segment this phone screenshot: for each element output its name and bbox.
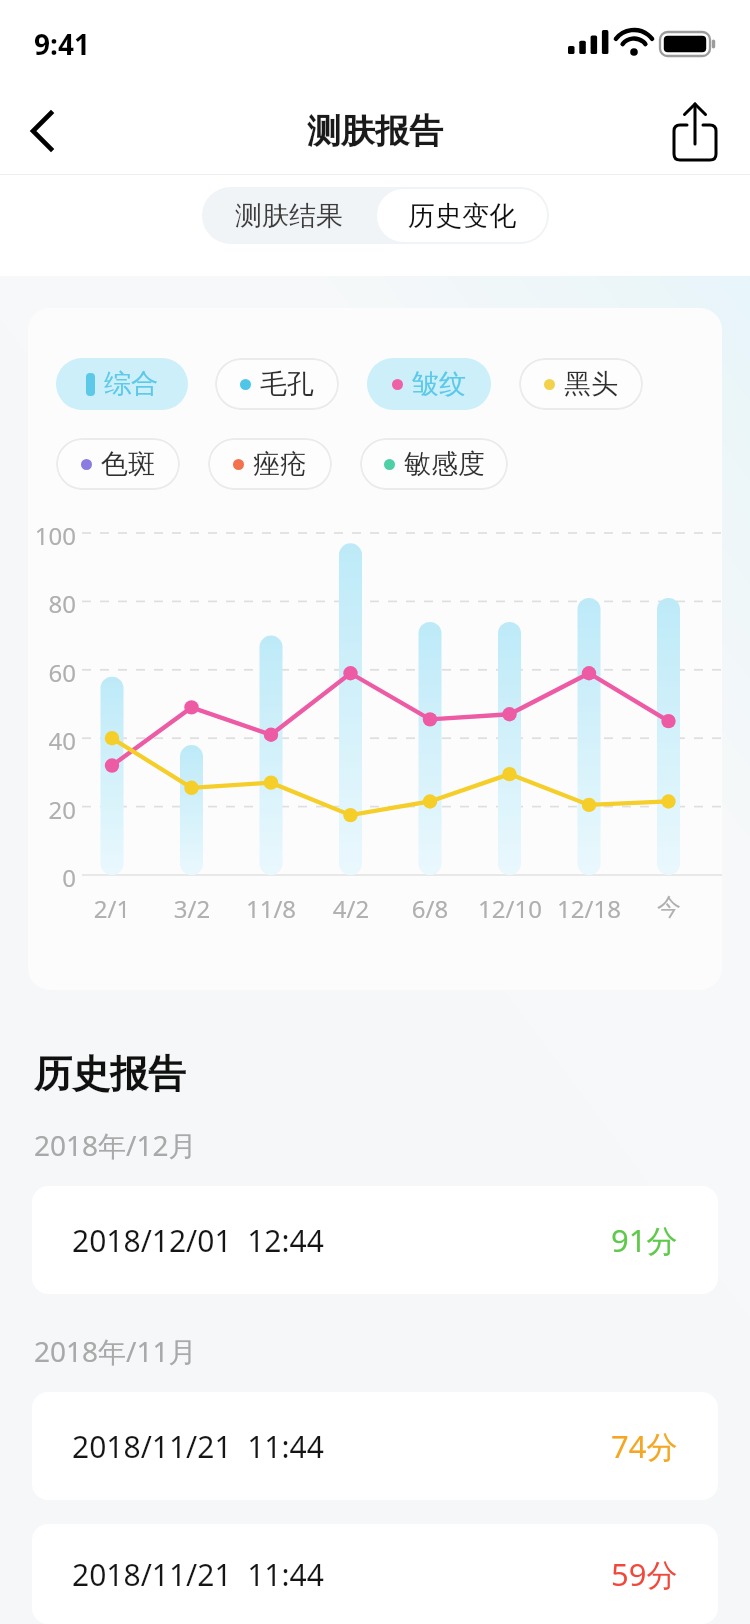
button[interactable]: 综合 bbox=[56, 358, 188, 410]
button[interactable]: Share bbox=[662, 98, 728, 164]
staticText: 3/2 bbox=[147, 892, 237, 925]
staticText: 2018/12/01 12:44 bbox=[72, 1220, 324, 1261]
staticText: 色斑 bbox=[101, 447, 155, 481]
staticText: 6/8 bbox=[385, 892, 475, 925]
button[interactable]: 敏感度 bbox=[360, 438, 508, 490]
staticText: 2018/11/21 11:44 bbox=[72, 1426, 324, 1467]
staticText: 59分 bbox=[611, 1553, 678, 1595]
staticText: 40 bbox=[28, 724, 76, 757]
button[interactable]: 历史变化 bbox=[377, 189, 547, 242]
staticText: 9:41 bbox=[34, 25, 90, 63]
staticText: 4/2 bbox=[306, 892, 396, 925]
staticText: 91分 bbox=[611, 1219, 678, 1261]
staticText: 今 bbox=[624, 892, 714, 922]
button[interactable]: Back bbox=[8, 99, 72, 163]
button[interactable]: 色斑 bbox=[56, 438, 180, 490]
staticText: 74分 bbox=[611, 1425, 678, 1467]
button[interactable]: 毛孔 bbox=[215, 358, 339, 410]
button[interactable]: 2018/11/21 11:44 bbox=[32, 1524, 718, 1624]
button[interactable]: 2018/12/01 12:44 bbox=[32, 1186, 718, 1294]
button[interactable]: 黑头 bbox=[519, 358, 643, 410]
staticText: 测肤报告 bbox=[307, 110, 443, 153]
button[interactable]: 痤疮 bbox=[208, 438, 332, 490]
staticText: 历史报告 bbox=[34, 1050, 186, 1098]
staticText: 80 bbox=[28, 587, 76, 620]
staticText: 毛孔 bbox=[260, 367, 314, 401]
staticText: 测肤结果 bbox=[235, 199, 343, 233]
staticText: 60 bbox=[28, 656, 76, 689]
staticText: 2018年/11月 bbox=[34, 1332, 197, 1370]
button[interactable]: 2018/11/21 11:44 bbox=[32, 1392, 718, 1500]
staticText: 11/8 bbox=[226, 892, 316, 925]
staticText: 黑头 bbox=[564, 367, 618, 401]
staticText: 2/1 bbox=[67, 892, 157, 925]
button[interactable]: 皱纹 bbox=[367, 358, 491, 410]
staticText: 12/10 bbox=[465, 892, 555, 925]
staticText: 100 bbox=[28, 519, 76, 552]
staticText: 20 bbox=[28, 793, 76, 826]
staticText: 敏感度 bbox=[404, 447, 485, 481]
staticText: 历史变化 bbox=[408, 199, 516, 233]
staticText: 综合 bbox=[104, 367, 158, 401]
staticText: 12/18 bbox=[544, 892, 634, 925]
staticText: 2018/11/21 11:44 bbox=[72, 1554, 324, 1595]
staticText: 2018年/12月 bbox=[34, 1126, 197, 1164]
staticText: 皱纹 bbox=[412, 367, 466, 401]
button[interactable]: 测肤结果 bbox=[202, 187, 375, 244]
staticText: 痤疮 bbox=[253, 447, 307, 481]
staticText: 0 bbox=[28, 861, 76, 894]
